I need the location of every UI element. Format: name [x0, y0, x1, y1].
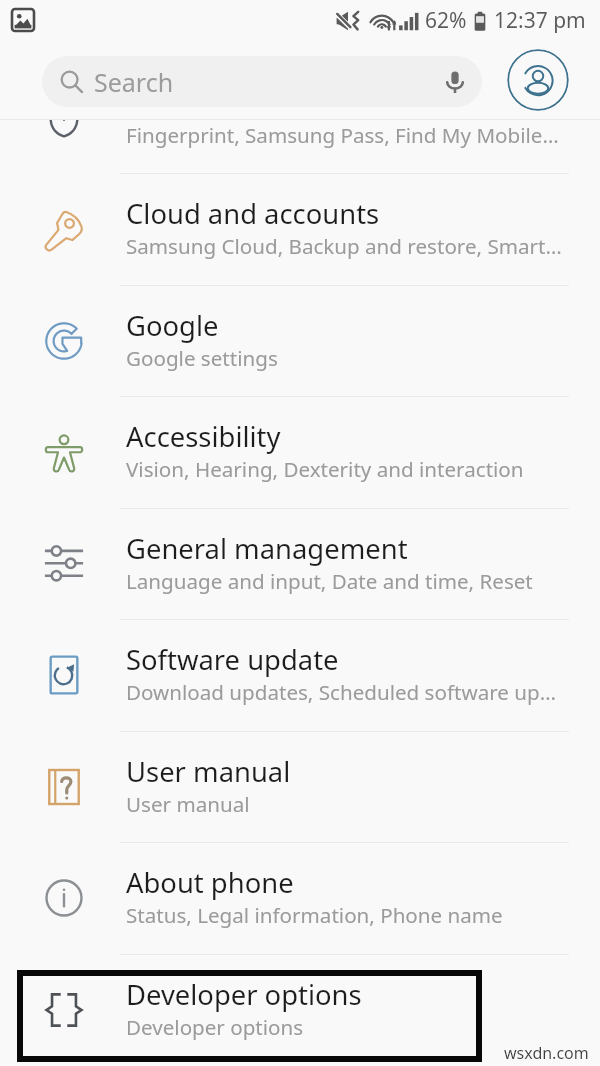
button[interactable]: Accessibility — [0, 396, 600, 508]
staticText: Cloud and accounts — [126, 195, 380, 232]
staticText: Google — [126, 307, 219, 344]
staticText: Vision, Hearing, Dexterity and interacti… — [126, 455, 524, 483]
staticText: User manual — [126, 790, 250, 818]
staticText: Developer options — [126, 1013, 304, 1041]
staticText: wsxdn.com — [504, 1042, 589, 1064]
staticText: Software update — [126, 641, 339, 678]
staticText: Status, Legal information, Phone name — [126, 901, 503, 929]
button[interactable]: Search — [42, 56, 482, 107]
button[interactable]: Developer options — [0, 954, 600, 1066]
button[interactable]: About phone — [0, 842, 600, 954]
staticText: Accessibility — [126, 418, 281, 455]
button[interactable]: Cloud and accounts — [0, 173, 600, 285]
staticText: About phone — [126, 864, 294, 901]
staticText: 12:37 pm — [494, 6, 586, 35]
button[interactable]: Samsung account — [507, 49, 569, 111]
staticText: Language and input, Date and time, Reset — [126, 567, 533, 595]
staticText: Google settings — [126, 344, 278, 372]
button[interactable]: Software update — [0, 619, 600, 731]
staticText: Samsung Cloud, Backup and restore, Smart… — [126, 232, 562, 260]
button[interactable] — [17, 970, 482, 1062]
button[interactable]: Google — [0, 285, 600, 397]
staticText: User manual — [126, 753, 291, 790]
staticText: Fingerprint, Samsung Pass, Find My Mobil… — [126, 121, 559, 149]
staticText: Download updates, Scheduled software up… — [126, 678, 556, 706]
staticText: Search — [94, 65, 174, 99]
button[interactable]: User manual — [0, 731, 600, 843]
button[interactable]: General management — [0, 508, 600, 620]
staticText: 62% — [425, 6, 467, 35]
staticText: Developer options — [126, 976, 362, 1013]
button[interactable]: Biometrics and security — [0, 120, 600, 174]
staticText: General management — [126, 530, 408, 567]
